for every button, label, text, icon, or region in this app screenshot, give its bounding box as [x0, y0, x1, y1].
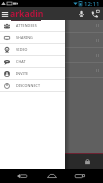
staticText: 12:11 [84, 0, 100, 7]
staticText: ATTENDEES [16, 23, 37, 28]
button[interactable]: Back [16, 170, 28, 182]
button[interactable]: Call options [91, 9, 100, 18]
staticText: CHAT [16, 59, 26, 64]
button[interactable]: SHARING [0, 32, 65, 43]
button[interactable]: Recent apps [74, 170, 86, 182]
button[interactable]: Mute microphone [77, 9, 86, 18]
button[interactable]: ATTENDEES [0, 20, 65, 31]
button[interactable]: CHAT [0, 56, 65, 67]
staticText: arkadin [10, 8, 44, 20]
staticText: SHARING [16, 35, 33, 40]
button[interactable]: VIDEO [0, 44, 65, 55]
staticText: VIDEO [16, 47, 28, 52]
button[interactable]: Home [46, 170, 58, 182]
staticText: DISCONNECT [16, 83, 41, 88]
button[interactable]: INVITE [0, 68, 65, 79]
staticText: INVITE [16, 71, 29, 76]
button[interactable]: Lock meeting [84, 158, 91, 165]
button[interactable]: Open navigation drawer [1, 10, 9, 18]
button[interactable]: DISCONNECT [0, 80, 65, 91]
